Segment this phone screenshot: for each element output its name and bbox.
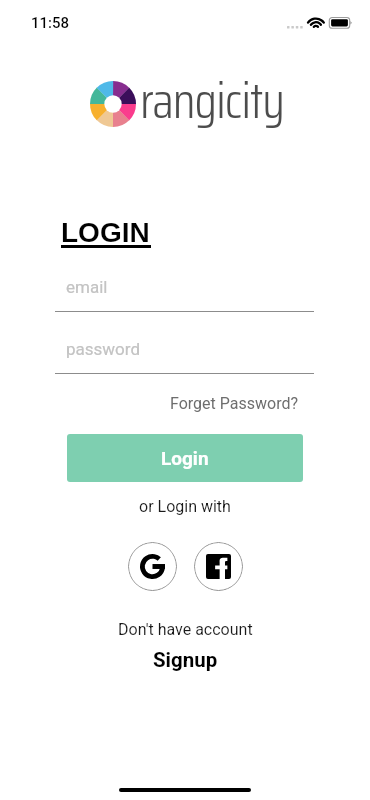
- staticText: Don't have account: [118, 620, 253, 639]
- button[interactable]: Sign in with Facebook: [194, 542, 243, 591]
- staticText: Login: [161, 447, 209, 469]
- staticText: Forget Password?: [170, 394, 298, 413]
- button[interactable]: email: [55, 276, 314, 312]
- staticText: rangicity: [140, 61, 285, 140]
- staticText: LOGIN: [61, 217, 150, 248]
- button[interactable]: password: [55, 338, 314, 374]
- staticText: 11:58: [31, 14, 70, 32]
- button[interactable]: Sign in with Google: [128, 542, 177, 591]
- button[interactable]: Forget Password?: [165, 391, 303, 416]
- staticText: or Login with: [139, 497, 231, 516]
- staticText: email: [66, 277, 108, 297]
- staticText: Signup: [153, 648, 218, 672]
- button[interactable]: Login: [67, 434, 303, 482]
- button[interactable]: Signup: [143, 645, 228, 675]
- staticText: password: [66, 339, 141, 359]
